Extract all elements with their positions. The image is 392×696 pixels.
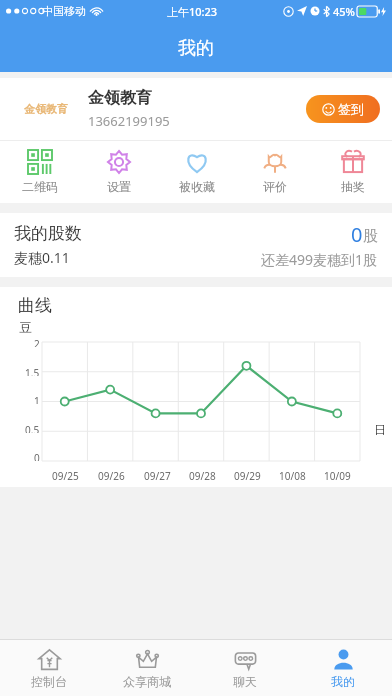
staticText: 13662199195 xyxy=(88,112,170,130)
button[interactable]: 我的股数 xyxy=(0,213,392,277)
staticText: 2 xyxy=(34,337,40,347)
staticText: 45% xyxy=(333,4,355,19)
staticText: 09/29 xyxy=(234,469,261,483)
staticText: 评价 xyxy=(263,179,287,194)
staticText: 签到 xyxy=(338,101,364,117)
button[interactable]: 我的 xyxy=(294,640,392,696)
staticText: 我的股数 xyxy=(14,223,82,244)
staticText: 还差499麦穗到1股 xyxy=(261,250,378,269)
staticText: 聊天 xyxy=(233,674,257,689)
staticText: 我的 xyxy=(331,674,355,689)
button[interactable]: 签到 xyxy=(306,95,380,123)
staticText: 0 xyxy=(34,451,40,461)
staticText: 被收藏 xyxy=(179,179,215,194)
staticText: 设置 xyxy=(107,179,131,194)
staticText: 众享商城 xyxy=(123,674,171,689)
button[interactable]: 抽奖 xyxy=(314,141,392,203)
button[interactable]: 聊天 xyxy=(196,640,294,696)
button[interactable]: 金领教育 xyxy=(0,78,392,140)
staticText: 1 xyxy=(34,394,40,404)
button[interactable]: 设置 xyxy=(79,141,158,203)
staticText: 10/08 xyxy=(279,469,306,483)
staticText: 我的 xyxy=(178,37,214,60)
button[interactable]: 控制台 xyxy=(0,640,98,696)
staticText: 股 xyxy=(363,227,378,246)
staticText: 0.5 xyxy=(25,423,40,433)
staticText: 豆 xyxy=(19,319,32,335)
staticText: 二维码 xyxy=(22,179,58,194)
staticText: 0 xyxy=(351,221,363,248)
staticText: 曲线 xyxy=(18,295,52,316)
staticText: 日 xyxy=(374,422,386,437)
staticText: 控制台 xyxy=(31,674,67,689)
staticText: 1.5 xyxy=(25,366,40,376)
staticText: 10/09 xyxy=(324,469,351,483)
staticText: 09/28 xyxy=(189,469,216,483)
staticText: 09/26 xyxy=(98,469,125,483)
staticText: 麦穗0.11 xyxy=(14,248,70,267)
staticText: 上午10:23 xyxy=(167,4,218,19)
button[interactable]: 众享商城 xyxy=(98,640,196,696)
staticText: 金领教育 xyxy=(14,102,78,116)
staticText: 09/27 xyxy=(144,469,171,483)
button[interactable]: 二维码 xyxy=(0,141,79,203)
staticText: 09/25 xyxy=(52,469,79,483)
button[interactable]: 被收藏 xyxy=(158,141,236,203)
button[interactable]: 评价 xyxy=(236,141,314,203)
staticText: 抽奖 xyxy=(341,179,365,194)
staticText: 中国移动 xyxy=(42,4,86,18)
staticText: 金领教育 xyxy=(88,88,152,108)
